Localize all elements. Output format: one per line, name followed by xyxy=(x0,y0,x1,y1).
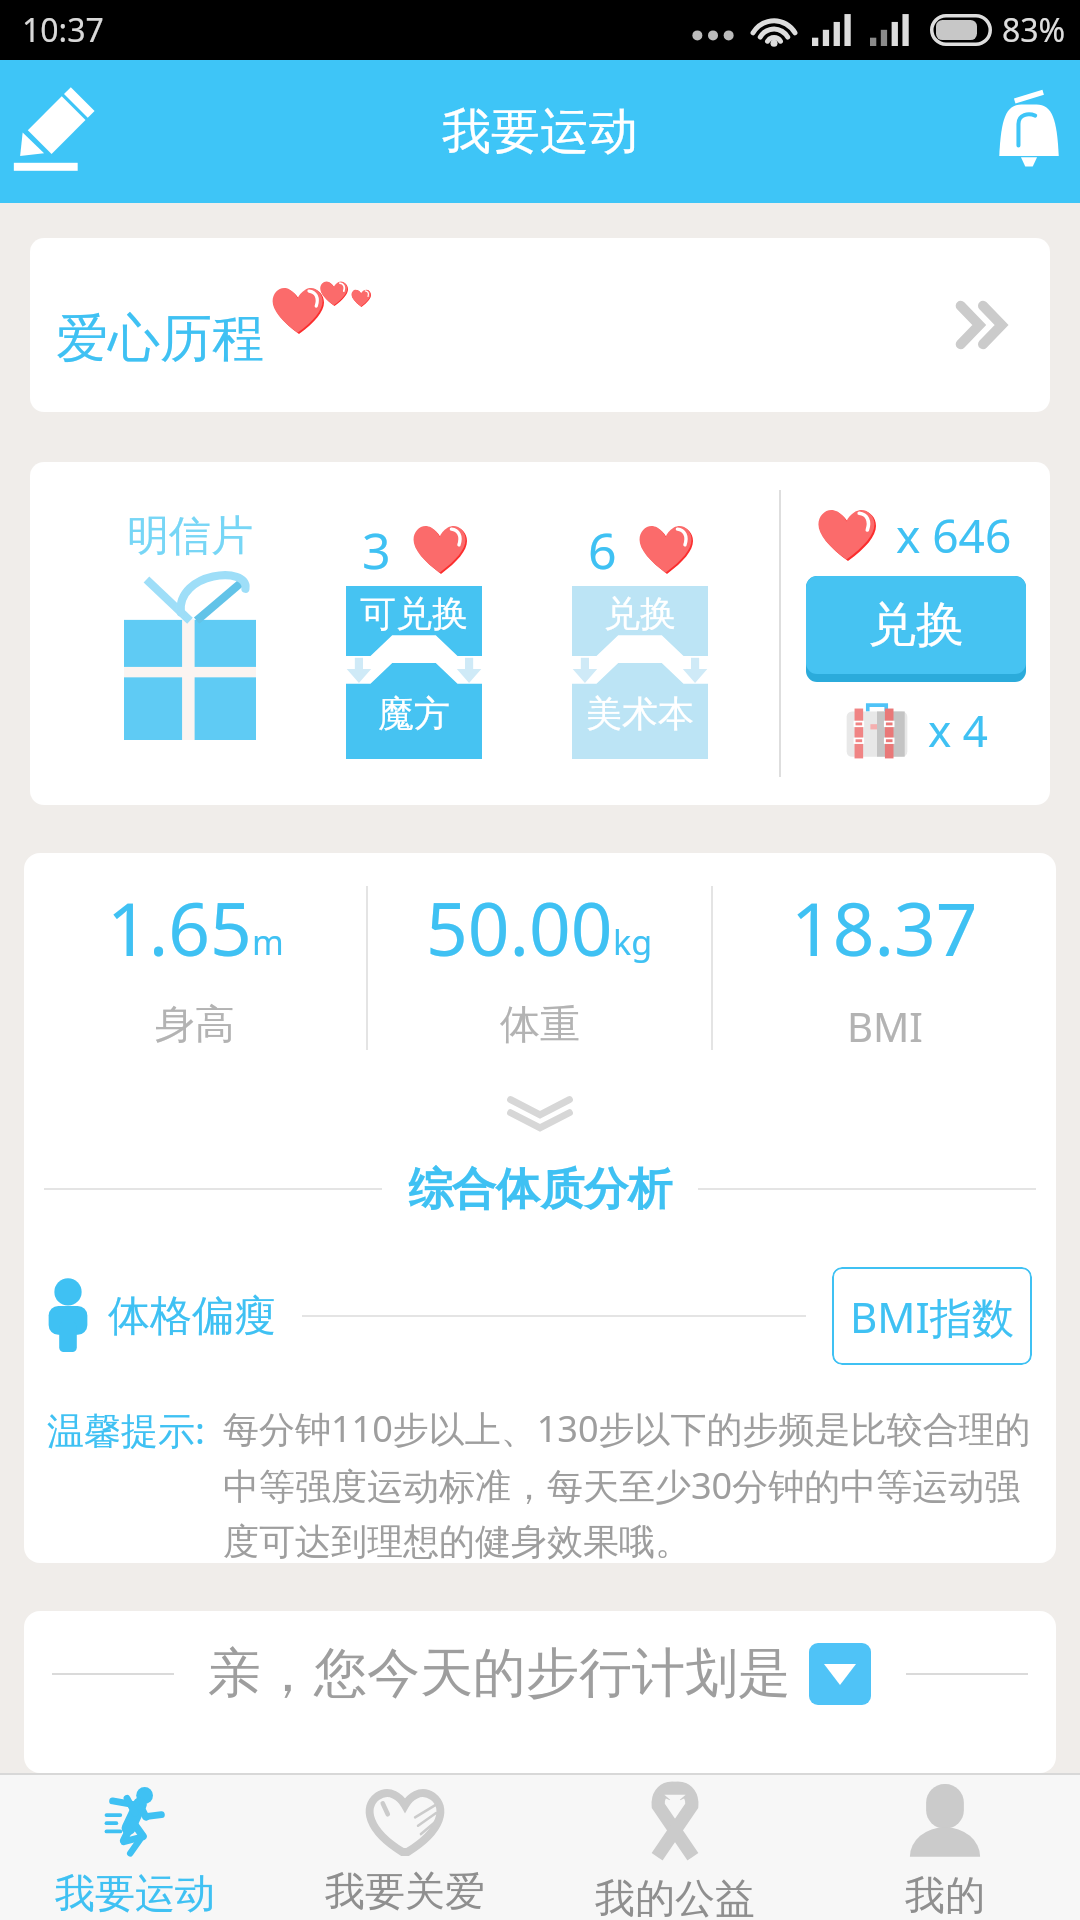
staticText: 综合体质分析 xyxy=(408,1162,672,1217)
staticText: 我要关爱 xyxy=(325,1866,485,1916)
staticText: 我的公益 xyxy=(595,1873,755,1920)
button[interactable]: Notifications xyxy=(970,77,1080,187)
staticText: 10:37 xyxy=(22,8,104,52)
button[interactable]: 我要关爱 xyxy=(270,1775,540,1920)
staticText: 体格偏瘦 xyxy=(108,1290,276,1343)
staticText: 18.37 xyxy=(791,878,978,977)
staticText: 兑换 xyxy=(868,595,964,655)
staticText: 83% xyxy=(1002,8,1066,52)
staticText: 身高 xyxy=(155,999,235,1049)
staticText: 美术本 xyxy=(586,691,694,736)
button[interactable]: Expand plan xyxy=(809,1643,871,1705)
staticText: 我的 xyxy=(905,1870,985,1920)
staticText: 我要运动 xyxy=(55,1868,215,1918)
staticText: 1.65 xyxy=(107,878,252,977)
button[interactable]: 3 xyxy=(301,462,527,805)
button[interactable]: 爱心历程 xyxy=(30,238,1050,412)
staticText: 亲，您今天的步行计划是 xyxy=(208,1640,791,1707)
staticText: 6 xyxy=(588,516,617,584)
staticText: 爱心历程 xyxy=(56,306,264,372)
staticText: 魔方 xyxy=(378,691,450,736)
staticText: BMI指数 xyxy=(850,1288,1014,1345)
staticText: x 646 xyxy=(896,504,1012,567)
button[interactable]: 6 xyxy=(527,462,753,805)
button[interactable]: Edit xyxy=(0,77,110,187)
staticText: 可兑换 xyxy=(360,591,468,636)
staticText: 每分钟110步以上、130步以下的步频是比较合理的中等强度运动标准，每天至少30… xyxy=(223,1404,1048,1563)
staticText: 明信片 xyxy=(127,510,253,563)
staticText: kg xyxy=(613,919,653,965)
button[interactable]: BMI指数 xyxy=(832,1267,1032,1365)
staticText: x 4 xyxy=(928,700,988,760)
button[interactable]: 我的公益 xyxy=(540,1775,810,1920)
button[interactable]: 我要运动 xyxy=(0,1775,270,1920)
staticText: BMI xyxy=(847,999,923,1053)
staticText: m xyxy=(252,919,284,965)
button[interactable]: 我的 xyxy=(810,1775,1080,1920)
staticText: 兑换 xyxy=(604,591,676,636)
staticText: 体重 xyxy=(500,999,580,1049)
button[interactable]: 明信片 xyxy=(45,462,335,805)
button[interactable]: 兑换 xyxy=(806,576,1026,682)
staticText: 3 xyxy=(362,516,391,584)
staticText: 我要运动 xyxy=(442,101,638,163)
staticText: 温馨提示: xyxy=(47,1404,205,1455)
staticText: 50.00 xyxy=(426,878,613,977)
